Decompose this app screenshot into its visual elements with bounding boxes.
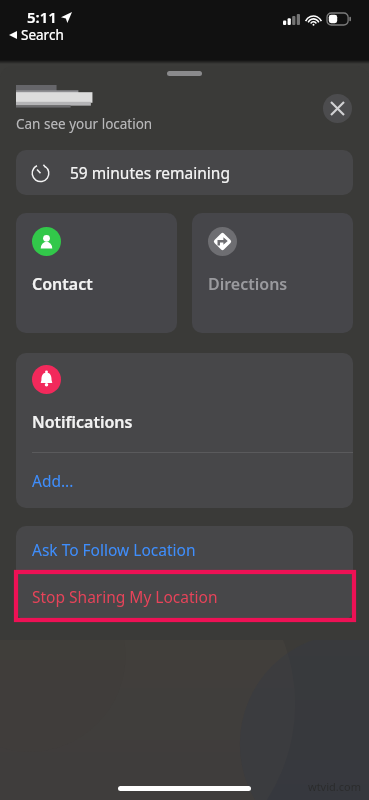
staticText: 59 minutes remaining	[70, 162, 230, 183]
button[interactable]: Search	[9, 26, 64, 44]
staticText: wtvid.com	[308, 779, 361, 794]
staticText: Ask To Follow Location	[32, 539, 196, 560]
staticText: Add...	[32, 470, 74, 491]
button[interactable]: Close	[323, 94, 352, 123]
button[interactable]: Stop Sharing My Location	[16, 573, 353, 620]
staticText: 5:11	[27, 7, 57, 27]
button[interactable]: Directions	[192, 213, 353, 333]
button[interactable]: 59 minutes remaining	[16, 150, 353, 195]
staticText: Directions	[208, 273, 288, 295]
button[interactable]: Ask To Follow Location	[16, 526, 353, 573]
staticText: Stop Sharing My Location	[32, 586, 218, 607]
staticText: Contact	[32, 273, 93, 295]
staticText: Notifications	[32, 411, 133, 433]
button[interactable]: Add...	[16, 453, 353, 508]
staticText: Search	[21, 26, 64, 44]
button[interactable]: Contact	[16, 213, 177, 333]
staticText: Can see your location	[16, 115, 153, 133]
